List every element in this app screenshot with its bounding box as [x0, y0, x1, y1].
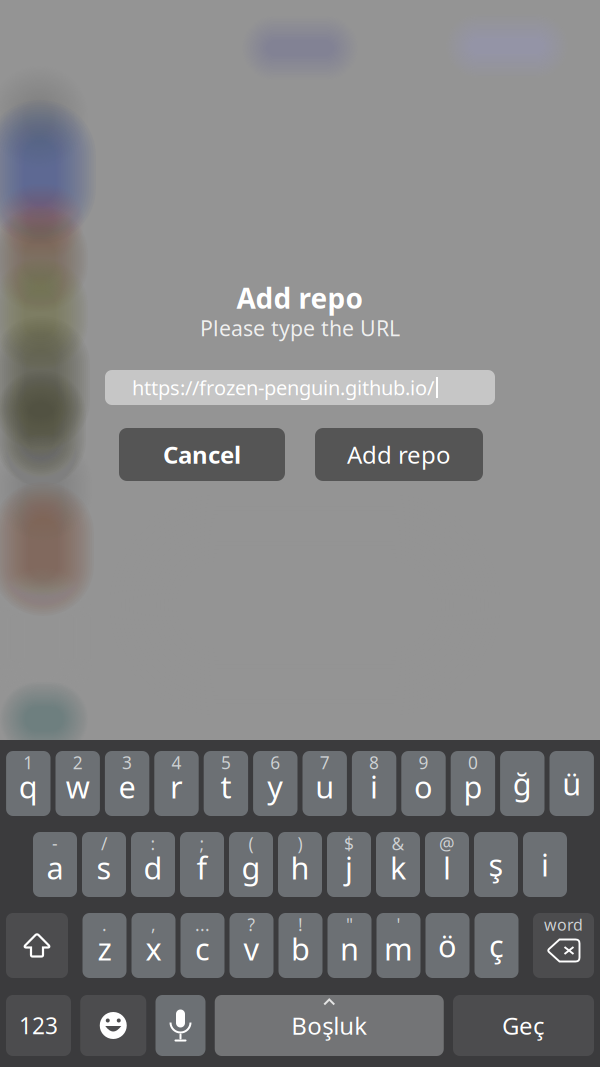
staticText: 5: [221, 751, 231, 774]
button[interactable]: i: [523, 832, 567, 897]
button[interactable]: /: [82, 832, 126, 897]
button[interactable]: 123: [6, 995, 71, 1056]
staticText: v: [243, 928, 259, 969]
staticText: .: [102, 913, 107, 936]
staticText: l: [443, 847, 451, 888]
staticText: x: [145, 928, 161, 969]
button[interactable]: 5: [204, 751, 248, 816]
staticText: Add repo: [347, 439, 451, 470]
staticText: p: [463, 766, 482, 807]
staticText: Boşluk: [291, 1010, 367, 1041]
button[interactable]: ": [327, 913, 371, 978]
button[interactable]: .: [82, 913, 126, 978]
button[interactable]: @: [425, 832, 469, 897]
button[interactable]: Boşluk: [215, 995, 444, 1056]
button[interactable]: &: [376, 832, 420, 897]
staticText: s: [96, 847, 111, 888]
button[interactable]: 1: [6, 751, 50, 816]
staticText: e: [119, 766, 136, 807]
staticText: u: [315, 766, 334, 807]
button[interactable]: Shift: [6, 913, 68, 978]
button[interactable]: 9: [401, 751, 446, 816]
button[interactable]: ,: [131, 913, 175, 978]
staticText: g: [241, 847, 260, 888]
staticText: Please type the URL: [200, 314, 400, 342]
staticText: ...: [195, 913, 210, 936]
button[interactable]: -: [33, 832, 77, 897]
staticText: i: [541, 844, 549, 885]
button[interactable]: 8: [352, 751, 396, 816]
staticText: j: [345, 847, 353, 888]
button[interactable]: ': [376, 913, 420, 978]
button[interactable]: (: [229, 832, 273, 897]
staticText: q: [19, 766, 38, 807]
button[interactable]: 0: [451, 751, 495, 816]
staticText: d: [143, 847, 162, 888]
staticText: b: [291, 928, 310, 969]
staticText: m: [384, 928, 413, 969]
staticText: h: [290, 847, 309, 888]
staticText: ş: [488, 844, 503, 885]
staticText: ?: [247, 913, 255, 936]
staticText: ç: [489, 925, 504, 966]
button[interactable]: ): [278, 832, 322, 897]
staticText: n: [340, 928, 359, 969]
button[interactable]: ...: [180, 913, 224, 978]
button[interactable]: $: [327, 832, 371, 897]
staticText: 9: [418, 751, 428, 774]
staticText: ": [346, 913, 353, 936]
staticText: k: [390, 847, 406, 888]
button[interactable]: ?: [229, 913, 273, 978]
staticText: 4: [171, 751, 181, 774]
button[interactable]: Cancel: [119, 428, 285, 481]
staticText: 123: [19, 1010, 58, 1040]
staticText: 0: [468, 751, 478, 774]
staticText: i: [370, 766, 378, 807]
staticText: word: [544, 914, 583, 935]
button[interactable]: 3: [105, 751, 149, 816]
staticText: c: [195, 928, 210, 969]
button[interactable]: 7: [302, 751, 347, 816]
staticText: @: [439, 832, 455, 855]
staticText: Cancel: [163, 439, 241, 470]
staticText: y: [267, 766, 283, 807]
button[interactable]: :: [131, 832, 175, 897]
button[interactable]: ö: [425, 913, 469, 978]
button[interactable]: 6: [253, 751, 297, 816]
staticText: a: [46, 847, 63, 888]
staticText: o: [414, 766, 433, 807]
staticText: 3: [122, 751, 132, 774]
button[interactable]: ç: [474, 913, 518, 978]
button[interactable]: ü: [549, 751, 594, 816]
staticText: 6: [270, 751, 280, 774]
button[interactable]: Emoji: [80, 995, 146, 1056]
button[interactable]: Add repo: [315, 428, 483, 481]
button[interactable]: 4: [154, 751, 199, 816]
staticText: /: [101, 832, 107, 855]
staticText: https://frozen-penguin.github.io/: [132, 374, 434, 401]
staticText: f: [196, 847, 207, 888]
staticText: r: [170, 766, 183, 807]
staticText: ;: [199, 832, 204, 855]
button[interactable]: Geç: [453, 995, 594, 1056]
staticText: -: [52, 832, 58, 855]
staticText: ö: [438, 925, 457, 966]
button[interactable]: ş: [474, 832, 518, 897]
button[interactable]: Delete: [533, 913, 594, 978]
staticText: (: [248, 832, 253, 855]
staticText: w: [66, 766, 90, 807]
staticText: Geç: [502, 1010, 545, 1041]
staticText: 8: [369, 751, 379, 774]
staticText: z: [97, 928, 111, 969]
button[interactable]: 2: [55, 751, 100, 816]
button[interactable]: Dictation: [155, 995, 205, 1056]
staticText: ': [396, 913, 400, 936]
staticText: Add repo: [236, 279, 363, 317]
button[interactable]: ;: [180, 832, 224, 897]
staticText: &: [391, 832, 404, 855]
button[interactable]: ğ: [500, 751, 544, 816]
staticText: ğ: [513, 763, 532, 804]
button[interactable]: !: [278, 913, 322, 978]
staticText: ,: [151, 913, 156, 936]
staticText: 1: [23, 751, 33, 774]
